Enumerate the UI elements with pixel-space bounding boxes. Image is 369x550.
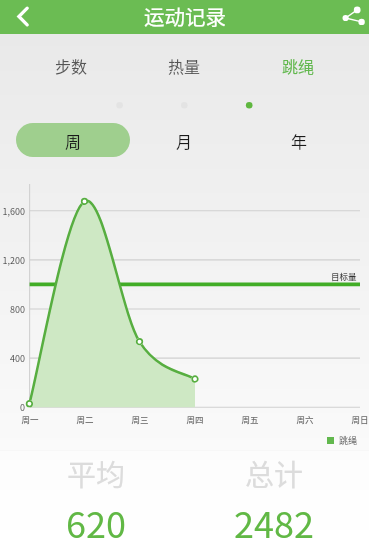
staticText: 月 xyxy=(176,129,193,152)
staticText: 周四 xyxy=(179,413,211,425)
staticText: 跳绳 xyxy=(339,434,358,446)
staticText: 年 xyxy=(291,129,308,152)
staticText: 周二 xyxy=(69,413,101,425)
button[interactable]: 总计 xyxy=(194,450,354,550)
staticText: 步数 xyxy=(55,54,88,77)
staticText: 2482 xyxy=(194,496,354,548)
staticText: 周五 xyxy=(234,413,266,425)
staticText: 周一 xyxy=(14,413,46,425)
staticText: 目标量 xyxy=(331,270,357,282)
staticText: 平均 xyxy=(16,452,176,494)
staticText: 热量 xyxy=(168,54,201,77)
button[interactable]: 步数 xyxy=(16,48,126,82)
button[interactable]: 周 xyxy=(16,123,130,157)
staticText: 周六 xyxy=(289,413,321,425)
staticText: 周 xyxy=(65,129,82,152)
button[interactable]: Back xyxy=(0,0,36,34)
staticText: 周三 xyxy=(124,413,156,425)
staticText: 800 xyxy=(0,303,25,316)
staticText: 400 xyxy=(0,352,25,365)
button[interactable]: Share xyxy=(333,0,369,34)
staticText: 620 xyxy=(16,496,176,548)
staticText: 1,200 xyxy=(0,254,25,267)
staticText: 0 xyxy=(0,401,25,414)
button[interactable]: 月 xyxy=(127,123,241,157)
button[interactable]: 平均 xyxy=(16,450,176,550)
staticText: 跳绳 xyxy=(282,54,315,77)
staticText: 总计 xyxy=(194,452,354,494)
staticText: 周日 xyxy=(344,413,369,425)
button[interactable]: 跳绳 xyxy=(243,48,353,82)
button[interactable]: 热量 xyxy=(129,48,239,82)
staticText: 1,600 xyxy=(0,205,25,218)
staticText: 运动记录 xyxy=(144,1,226,31)
button[interactable]: 年 xyxy=(242,123,356,157)
